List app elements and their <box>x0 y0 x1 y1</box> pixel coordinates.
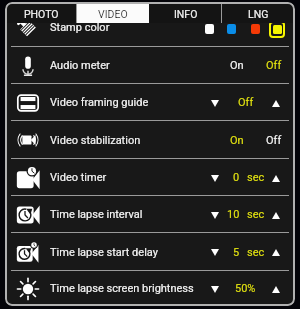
staticText: On <box>230 134 244 147</box>
button[interactable]: Decrease <box>205 92 225 114</box>
button[interactable]: INFO <box>149 4 222 23</box>
staticText: INFO <box>174 8 198 20</box>
button[interactable]: Colour swatch <box>251 23 260 40</box>
button[interactable]: On <box>218 121 255 159</box>
button[interactable]: Video framing guide <box>5 84 295 121</box>
staticText: sec <box>247 246 265 259</box>
button[interactable]: Decrease <box>205 241 225 263</box>
button[interactable]: Time lapse start delay <box>5 233 295 271</box>
button[interactable]: Off <box>255 121 293 159</box>
staticText: Video timer <box>50 171 197 184</box>
staticText: LNG <box>248 8 269 20</box>
staticText: 50% <box>235 282 256 295</box>
button[interactable]: On <box>218 47 255 84</box>
staticText: sec <box>247 208 265 221</box>
button[interactable]: Audio meter <box>5 47 295 84</box>
staticText: Video framing guide <box>50 96 197 109</box>
button[interactable]: Increase <box>266 92 286 114</box>
button[interactable]: Selected colour <box>269 23 285 40</box>
button[interactable]: Increase <box>266 167 286 189</box>
staticText: 10 <box>227 208 240 221</box>
staticText: PHOTO <box>24 8 59 20</box>
staticText: Time lapse start delay <box>50 246 197 259</box>
button[interactable]: Colour swatch <box>227 23 236 40</box>
button[interactable]: Video stabilization <box>5 121 295 159</box>
button[interactable]: Colour swatch <box>205 23 214 40</box>
button[interactable]: Off <box>255 47 293 84</box>
staticText: Time lapse interval <box>50 208 197 221</box>
staticText: sec <box>247 171 265 184</box>
staticText: Audio meter <box>50 59 218 72</box>
staticText: 5 <box>233 246 240 259</box>
button[interactable]: LNG <box>222 4 295 23</box>
button[interactable]: Time lapse interval <box>5 196 295 233</box>
staticText: On <box>230 59 244 72</box>
staticText: Time lapse screen brightness <box>50 282 197 295</box>
button[interactable]: Increase <box>266 278 286 300</box>
button[interactable]: Increase <box>266 241 286 263</box>
button[interactable]: Video timer <box>5 159 295 196</box>
button[interactable]: Decrease <box>205 204 225 226</box>
button[interactable]: Time lapse screen brightness <box>5 271 295 306</box>
button[interactable]: Increase <box>266 204 286 226</box>
staticText: 0 <box>233 171 240 184</box>
staticText: Off <box>266 59 282 72</box>
button[interactable]: PHOTO <box>5 4 77 23</box>
staticText: VIDEO <box>98 8 128 20</box>
staticText: Stamp color <box>50 23 205 34</box>
staticText: Off <box>238 96 254 109</box>
button[interactable]: Decrease <box>205 278 225 300</box>
staticText: Off <box>266 134 282 147</box>
button[interactable]: VIDEO <box>77 4 149 23</box>
button[interactable]: Decrease <box>205 167 225 189</box>
staticText: Video stabilization <box>50 134 218 147</box>
button[interactable]: Stamp color <box>5 23 295 47</box>
